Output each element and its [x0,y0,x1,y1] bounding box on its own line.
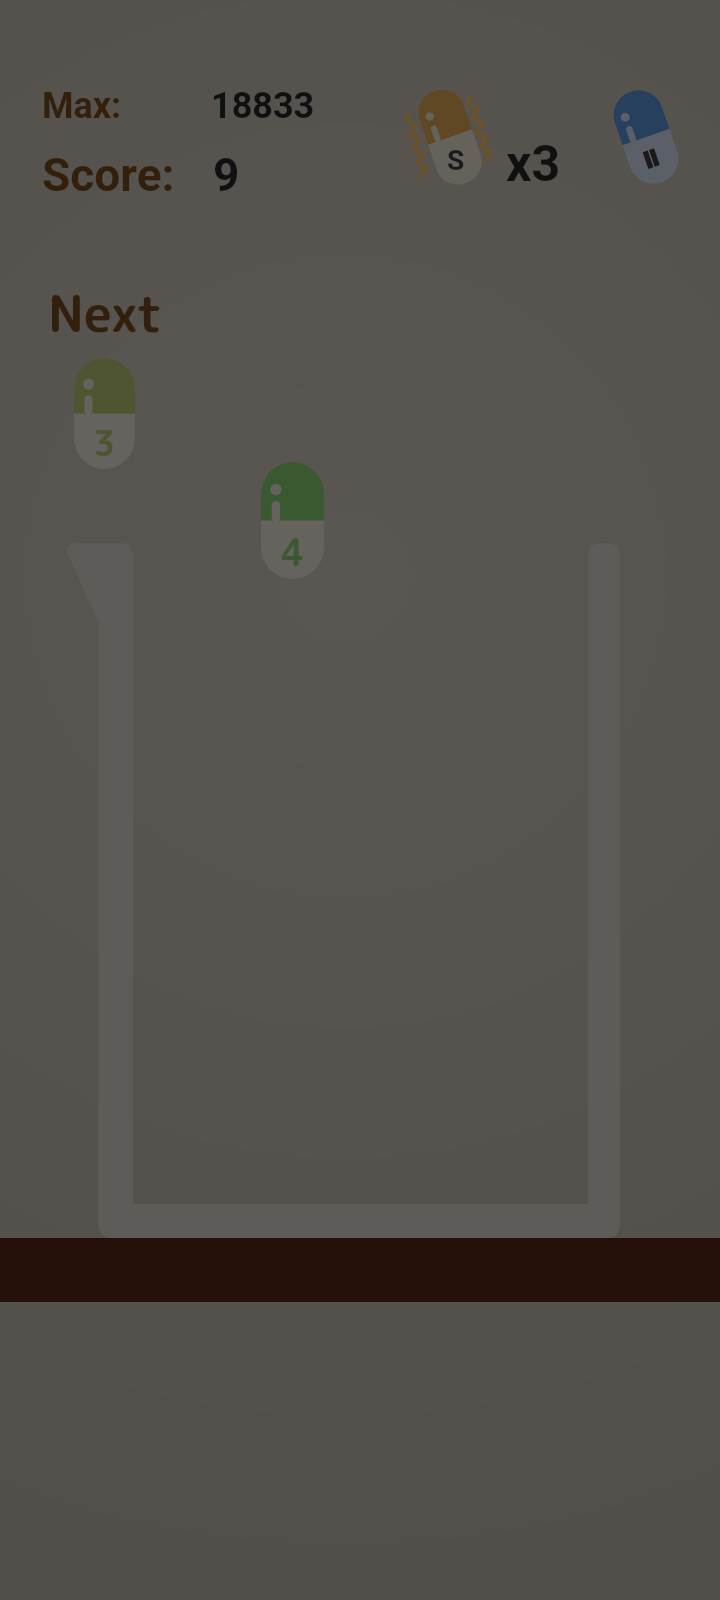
staticText: 9 [213,148,240,202]
staticText: 18833 [211,85,315,127]
staticText: x3 [506,135,561,194]
staticText: S [447,144,465,177]
staticText: 4 [281,526,305,577]
button[interactable]: Shake board [396,78,566,194]
staticText: Max: [42,85,122,127]
staticText: Next [48,277,163,348]
staticText: 3 [93,418,116,467]
button[interactable]: Pause [604,82,688,192]
staticText: Score: [42,148,175,202]
